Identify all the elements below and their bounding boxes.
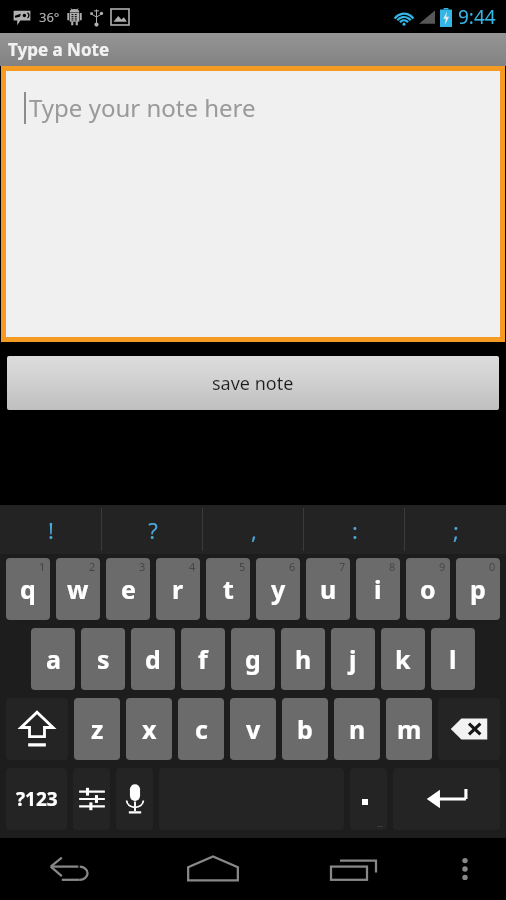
staticText: : bbox=[352, 515, 358, 545]
staticText: h bbox=[295, 642, 312, 676]
staticText: k bbox=[395, 642, 411, 676]
staticText: 9 bbox=[439, 559, 446, 574]
button[interactable]: Shift bbox=[6, 698, 68, 760]
staticText: 3 bbox=[139, 559, 146, 574]
staticText: 4 bbox=[189, 559, 196, 574]
button[interactable]: y bbox=[256, 558, 300, 620]
button[interactable]: v bbox=[230, 698, 276, 760]
button[interactable]: m bbox=[386, 698, 432, 760]
button[interactable]: Home bbox=[142, 838, 283, 900]
staticText: p bbox=[470, 572, 486, 606]
button[interactable]: d bbox=[131, 628, 175, 690]
button[interactable]: a bbox=[31, 628, 75, 690]
button[interactable]: Input settings bbox=[73, 768, 110, 830]
staticText: save note bbox=[212, 371, 294, 396]
staticText: m bbox=[397, 712, 422, 746]
button[interactable]: Type your note here bbox=[6, 71, 500, 337]
staticText: 9:44 bbox=[458, 4, 496, 30]
staticText: 5 bbox=[239, 559, 246, 574]
staticText: ! bbox=[48, 515, 54, 545]
staticText: s bbox=[97, 642, 110, 676]
staticText: x bbox=[142, 712, 157, 746]
staticText: l bbox=[449, 642, 457, 676]
button[interactable]: w bbox=[56, 558, 100, 620]
staticText: 2 bbox=[89, 559, 96, 574]
button[interactable]: z bbox=[74, 698, 120, 760]
button[interactable]: ; bbox=[405, 505, 506, 554]
button[interactable]: h bbox=[281, 628, 325, 690]
staticText: Type a Note bbox=[8, 38, 110, 61]
button[interactable]: : bbox=[304, 505, 405, 554]
staticText: g bbox=[245, 642, 261, 676]
staticText: u bbox=[320, 572, 337, 606]
staticText: c bbox=[195, 712, 208, 746]
button[interactable]: b bbox=[282, 698, 328, 760]
button[interactable]: f bbox=[181, 628, 225, 690]
button[interactable]: Voice input bbox=[116, 768, 153, 830]
staticText: r bbox=[172, 572, 184, 606]
staticText: w bbox=[67, 572, 89, 606]
staticText: v bbox=[246, 712, 261, 746]
button[interactable]: More options bbox=[424, 838, 506, 900]
button[interactable]: Period bbox=[350, 768, 387, 830]
staticText: Type your note here bbox=[29, 91, 256, 124]
button[interactable]: ! bbox=[0, 505, 102, 554]
button[interactable]: , bbox=[203, 505, 304, 554]
button[interactable]: c bbox=[178, 698, 224, 760]
button[interactable]: u bbox=[306, 558, 350, 620]
staticText: y bbox=[271, 572, 286, 606]
button[interactable]: Recents bbox=[283, 838, 424, 900]
staticText: 1 bbox=[39, 559, 46, 574]
button[interactable]: l bbox=[431, 628, 475, 690]
button[interactable]: q bbox=[6, 558, 50, 620]
button[interactable]: j bbox=[331, 628, 375, 690]
button[interactable]: save note bbox=[7, 356, 499, 410]
button[interactable]: r bbox=[156, 558, 200, 620]
button[interactable]: Backspace bbox=[438, 698, 500, 760]
staticText: n bbox=[349, 712, 366, 746]
staticText: 6 bbox=[289, 559, 296, 574]
staticText: o bbox=[420, 572, 436, 606]
staticText: f bbox=[198, 642, 208, 676]
button[interactable]: n bbox=[334, 698, 380, 760]
button[interactable]: o bbox=[406, 558, 450, 620]
button[interactable]: s bbox=[81, 628, 125, 690]
button[interactable]: x bbox=[126, 698, 172, 760]
button[interactable]: p bbox=[456, 558, 500, 620]
button[interactable]: t bbox=[206, 558, 250, 620]
staticText: 36° bbox=[39, 8, 60, 26]
staticText: 7 bbox=[339, 559, 346, 574]
button[interactable]: e bbox=[106, 558, 150, 620]
staticText: d bbox=[145, 642, 161, 676]
staticText: e bbox=[121, 572, 136, 606]
button[interactable]: ? bbox=[102, 505, 203, 554]
staticText: j bbox=[349, 642, 357, 676]
staticText: 0 bbox=[489, 559, 496, 574]
staticText: a bbox=[46, 642, 61, 676]
staticText: z bbox=[91, 712, 104, 746]
staticText: ?123 bbox=[16, 786, 58, 812]
staticText: t bbox=[223, 572, 234, 606]
button[interactable]: k bbox=[381, 628, 425, 690]
button[interactable]: g bbox=[231, 628, 275, 690]
staticText: ... bbox=[377, 820, 383, 830]
staticText: q bbox=[20, 572, 36, 606]
button[interactable]: Enter bbox=[393, 768, 500, 830]
staticText: ; bbox=[453, 515, 459, 545]
staticText: , bbox=[251, 515, 257, 545]
button[interactable]: ?123 bbox=[6, 768, 67, 830]
staticText: i bbox=[374, 572, 382, 606]
staticText: 8 bbox=[389, 559, 396, 574]
staticText: b bbox=[297, 712, 313, 746]
button[interactable]: i bbox=[356, 558, 400, 620]
button[interactable]: Back bbox=[0, 838, 142, 900]
staticText: ? bbox=[148, 515, 158, 545]
